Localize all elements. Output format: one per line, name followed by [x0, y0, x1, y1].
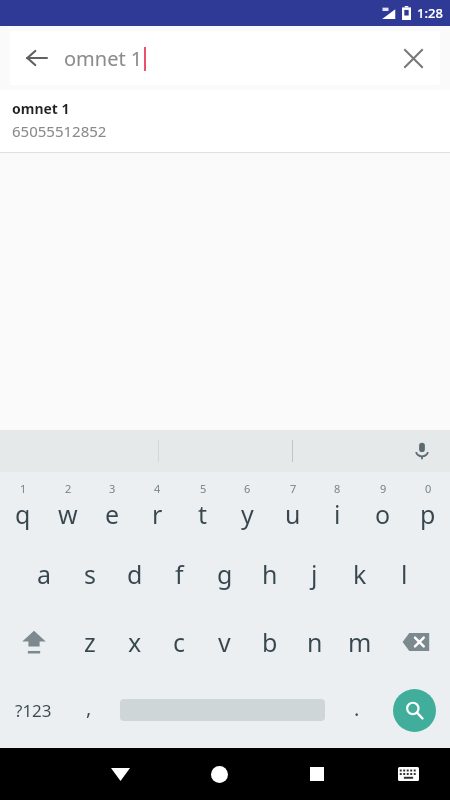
staticText: 8	[334, 481, 341, 496]
staticText: j	[311, 557, 318, 591]
button[interactable]: ?123	[0, 676, 66, 744]
button[interactable]: Clear	[386, 31, 440, 85]
button[interactable]: Shift	[0, 608, 67, 676]
button[interactable]: s	[67, 540, 112, 608]
staticText: d	[127, 557, 143, 591]
staticText: 7	[290, 481, 297, 496]
staticText: l	[401, 557, 408, 591]
staticText: 1	[20, 481, 27, 496]
staticText: omnet 1	[64, 45, 143, 72]
button[interactable]: Switch keyboard	[366, 748, 450, 800]
button[interactable]: c	[157, 608, 202, 676]
staticText: e	[105, 497, 120, 531]
button[interactable]: 3	[90, 472, 135, 540]
staticText: c	[173, 625, 186, 659]
staticText: z	[84, 625, 96, 659]
staticText: 65055512852	[12, 121, 107, 141]
staticText: n	[307, 625, 323, 659]
staticText: 3	[109, 481, 116, 496]
button[interactable]: h	[247, 540, 292, 608]
button[interactable]: l	[382, 540, 427, 608]
button[interactable]: Home	[170, 748, 268, 800]
staticText: x	[128, 625, 142, 659]
staticText: b	[262, 625, 278, 659]
button[interactable]: f	[157, 540, 202, 608]
staticText: 6	[244, 481, 251, 496]
staticText: ,	[86, 694, 92, 721]
staticText: 4	[154, 481, 161, 496]
button[interactable]: Recents	[268, 748, 366, 800]
staticText: y	[241, 497, 254, 531]
staticText: 9	[380, 481, 387, 496]
staticText: q	[15, 497, 31, 531]
button[interactable]: 7	[270, 472, 315, 540]
staticText: t	[198, 497, 208, 531]
staticText: i	[334, 497, 341, 531]
button[interactable]: k	[337, 540, 382, 608]
staticText: p	[420, 497, 436, 531]
button[interactable]: Hide keyboard	[71, 748, 170, 800]
staticText: r	[152, 497, 163, 531]
staticText: ?123	[15, 699, 52, 722]
button[interactable]: d	[112, 540, 157, 608]
button[interactable]: 5	[180, 472, 225, 540]
staticText: a	[37, 557, 52, 591]
button[interactable]: b	[247, 608, 292, 676]
button[interactable]: 0	[405, 472, 450, 540]
button[interactable]: z	[67, 608, 112, 676]
staticText: .	[354, 695, 360, 722]
staticText: 5	[200, 481, 207, 496]
staticText: 2	[65, 481, 72, 496]
staticText: omnet 1	[12, 99, 70, 118]
staticText: m	[348, 625, 372, 659]
button[interactable]: 4	[135, 472, 180, 540]
staticText: v	[218, 625, 231, 659]
button[interactable]: .	[334, 676, 379, 744]
button[interactable]: a	[22, 540, 67, 608]
button[interactable]: x	[112, 608, 157, 676]
button[interactable]: Search	[379, 676, 450, 744]
staticText: h	[262, 557, 278, 591]
button[interactable]: omnet 1	[0, 90, 450, 152]
staticText: w	[58, 497, 78, 531]
button[interactable]: Backspace	[382, 608, 450, 676]
staticText: f	[175, 557, 184, 591]
button[interactable]: Space	[111, 676, 334, 744]
button[interactable]: v	[202, 608, 247, 676]
staticText: g	[217, 557, 233, 591]
button[interactable]: n	[292, 608, 337, 676]
button[interactable]: 6	[225, 472, 270, 540]
button[interactable]: m	[337, 608, 382, 676]
staticText: k	[353, 557, 367, 591]
button[interactable]: Voice input	[404, 433, 440, 469]
button[interactable]: 2	[45, 472, 90, 540]
staticText: u	[285, 497, 301, 531]
button[interactable]: Back	[10, 31, 64, 85]
staticText: s	[84, 557, 96, 591]
staticText: o	[375, 497, 391, 531]
button[interactable]: j	[292, 540, 337, 608]
staticText: 0	[425, 481, 432, 496]
staticText: 1:28	[417, 4, 443, 22]
button[interactable]: 8	[315, 472, 360, 540]
button[interactable]: 1	[0, 472, 45, 540]
button[interactable]: g	[202, 540, 247, 608]
button[interactable]: 9	[360, 472, 405, 540]
button[interactable]: ,	[66, 676, 111, 744]
